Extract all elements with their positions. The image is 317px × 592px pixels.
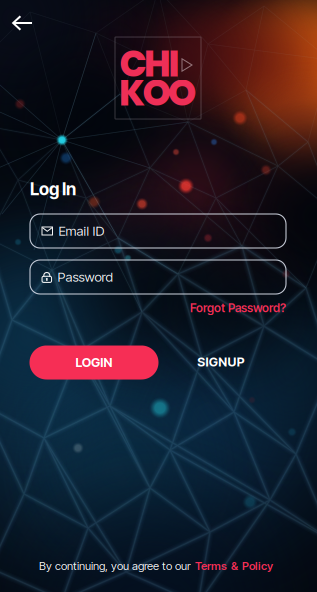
staticText: By continuing, you agree to our	[39, 559, 191, 573]
button[interactable]: LOGIN	[29, 345, 158, 379]
button[interactable]: Password	[30, 260, 286, 294]
staticText: SIGNUP	[197, 354, 245, 370]
button[interactable]: Back	[0, 3, 43, 43]
button[interactable]: SIGNUP	[179, 344, 263, 380]
staticText: CHI	[120, 39, 179, 89]
button[interactable]: Forgot Password?	[190, 301, 286, 315]
staticText: Terms & Policy	[195, 559, 273, 573]
staticText: Log In	[30, 178, 76, 199]
staticText: LOGIN	[75, 355, 113, 370]
staticText: Email ID	[58, 223, 104, 239]
button[interactable]: Email ID	[30, 214, 286, 248]
staticText: Forgot Password?	[190, 301, 286, 315]
button[interactable]: Terms & Policy	[195, 559, 273, 573]
staticText: KOO	[119, 68, 196, 118]
staticText: Password	[58, 269, 113, 285]
